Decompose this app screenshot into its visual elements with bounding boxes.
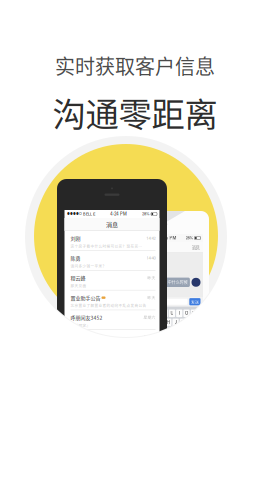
staticText: 陈勇 [151,243,163,252]
staticText: 14:42 [146,236,155,241]
staticText: 28% [142,212,150,216]
staticText: 28% [185,236,193,240]
staticText: P [192,311,195,316]
staticText: 4:24 PM [110,211,127,216]
staticText: 这个房子看中什么时候 [148,279,188,285]
staticText: 消息 [191,244,199,250]
staticText: O [185,311,188,316]
staticText: 14:40 [146,256,155,260]
staticText: ●●●●○ [67,212,82,216]
staticText: R [149,311,152,316]
staticText: 程云峰 [70,274,85,281]
staticText: 刘刚 [70,235,80,242]
staticText: 那天见面 [70,283,86,288]
staticText: BELL 𝖤 [82,212,95,216]
staticText: X [145,329,148,334]
staticText: 陈勇 [70,254,80,262]
staticText: 昨天 [147,295,155,300]
staticText: 北京置业了解置业者的动向不乱点发商公告 [70,303,146,308]
staticText: 消息 [106,220,118,229]
button[interactable]: 刘刚 [64,231,159,251]
staticText: 实时获取客户信息 [55,51,215,80]
staticText: J [175,320,177,325]
staticText: 沟通零距离 [52,88,217,136]
staticText: 这个房子看中什么时候可以买？现在买… [70,243,142,249]
button[interactable]: 呼朋闲友3452 [64,310,159,330]
button[interactable]: 置业助手公告 [64,290,159,310]
staticText: 请问多少钱一平米？ [124,265,160,271]
staticText: U [170,311,173,316]
staticText: V [159,329,162,334]
staticText: 呼朋闲友3452 [70,314,102,321]
staticText: 星期六 [143,315,155,320]
staticText: 发送 [191,299,199,305]
button[interactable]: 陈勇 [64,251,159,271]
staticText: 4:25 PM [158,235,176,240]
staticText: 请问多少钱一平米？ [70,263,106,268]
staticText: 『预定』 [70,323,90,328]
staticText: H [167,320,170,325]
button[interactable]: 王小明 [64,330,159,350]
staticText: 置业助手公告 [70,294,100,301]
staticText: I [179,311,180,316]
staticText: 星期五 [143,335,155,340]
staticText: K [181,320,184,325]
staticText: Z [138,329,141,334]
staticText: 昨天 [147,275,155,280]
button[interactable]: 发送 [187,298,200,305]
staticText: BELL 𝖤 [136,236,149,240]
button[interactable]: 程云峰 [64,271,159,290]
staticText: C [152,329,155,334]
